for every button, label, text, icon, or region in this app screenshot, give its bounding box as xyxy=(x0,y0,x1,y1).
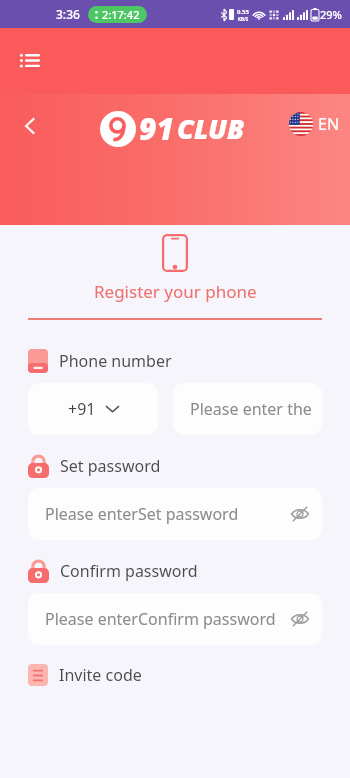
staticText: 2:17:42 xyxy=(102,7,140,22)
staticText: EN xyxy=(318,113,340,135)
button[interactable]: EN xyxy=(289,112,340,136)
staticText: +91 xyxy=(68,398,96,420)
button[interactable]: Please enterConfirm password xyxy=(28,593,322,645)
staticText: Invite code xyxy=(59,664,142,686)
button[interactable]: Back xyxy=(10,106,50,146)
button[interactable]: Please enterSet password xyxy=(28,488,322,540)
staticText: Phone number xyxy=(59,350,172,372)
button[interactable]: Please enter the phone number xyxy=(173,383,322,435)
staticText: 3:36 xyxy=(56,6,80,22)
staticText: KB/S xyxy=(238,16,249,22)
staticText: Please enterSet password xyxy=(45,503,239,525)
staticText: Please enter the phone number xyxy=(190,398,322,420)
staticText: Set password xyxy=(60,455,161,477)
staticText: CLUB xyxy=(177,110,245,147)
staticText: Confirm password xyxy=(60,560,198,582)
button[interactable]: Show password xyxy=(285,499,315,529)
button[interactable]: Menu xyxy=(14,45,46,77)
staticText: Register your phone xyxy=(94,280,257,303)
button[interactable]: Show password xyxy=(285,604,315,634)
staticText: 0.55 xyxy=(237,8,249,16)
staticText: Please enterConfirm password xyxy=(45,608,276,630)
staticText: 29% xyxy=(320,7,342,22)
staticText: 91 xyxy=(139,108,174,149)
button[interactable]: +91 xyxy=(28,383,158,435)
